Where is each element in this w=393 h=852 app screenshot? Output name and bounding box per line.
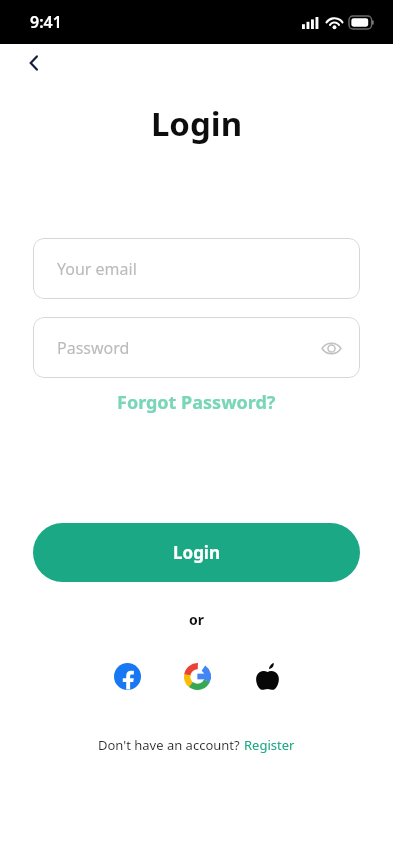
- staticText: Register: [244, 736, 295, 754]
- staticText: Login: [0, 101, 393, 146]
- button[interactable]: Your email: [33, 238, 360, 299]
- staticText: or: [0, 610, 393, 629]
- button[interactable]: Back: [17, 46, 51, 80]
- button[interactable]: Register: [244, 736, 295, 754]
- button[interactable]: Sign in with Apple: [245, 654, 289, 698]
- button[interactable]: Show password: [315, 332, 347, 364]
- button[interactable]: Sign in with Facebook: [105, 654, 149, 698]
- button[interactable]: Login: [33, 523, 360, 582]
- staticText: Password: [57, 337, 130, 359]
- staticText: Don't have an account?: [98, 736, 244, 754]
- staticText: Your email: [57, 258, 137, 280]
- button[interactable]: Sign in with Google: [175, 654, 219, 698]
- staticText: Login: [173, 541, 221, 564]
- staticText: 9:41: [30, 11, 62, 33]
- staticText: Forgot Password?: [117, 390, 276, 415]
- button[interactable]: Password: [33, 317, 360, 378]
- button[interactable]: Forgot Password?: [109, 386, 284, 419]
